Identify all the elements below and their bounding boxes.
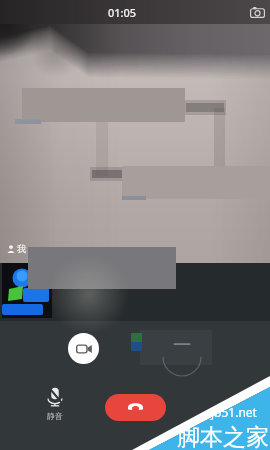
button[interactable]: Hang up — [105, 394, 166, 421]
button[interactable]: 静音 — [33, 386, 77, 421]
staticText: jb51.net — [211, 404, 257, 420]
staticText: 我 — [17, 243, 26, 254]
staticText: 静音 — [47, 411, 63, 421]
staticText: 01:05 — [108, 5, 137, 20]
button[interactable]: Camera — [244, 0, 270, 24]
button[interactable]: Switch to video — [68, 333, 99, 364]
staticText: 脚本之家 — [177, 423, 269, 450]
